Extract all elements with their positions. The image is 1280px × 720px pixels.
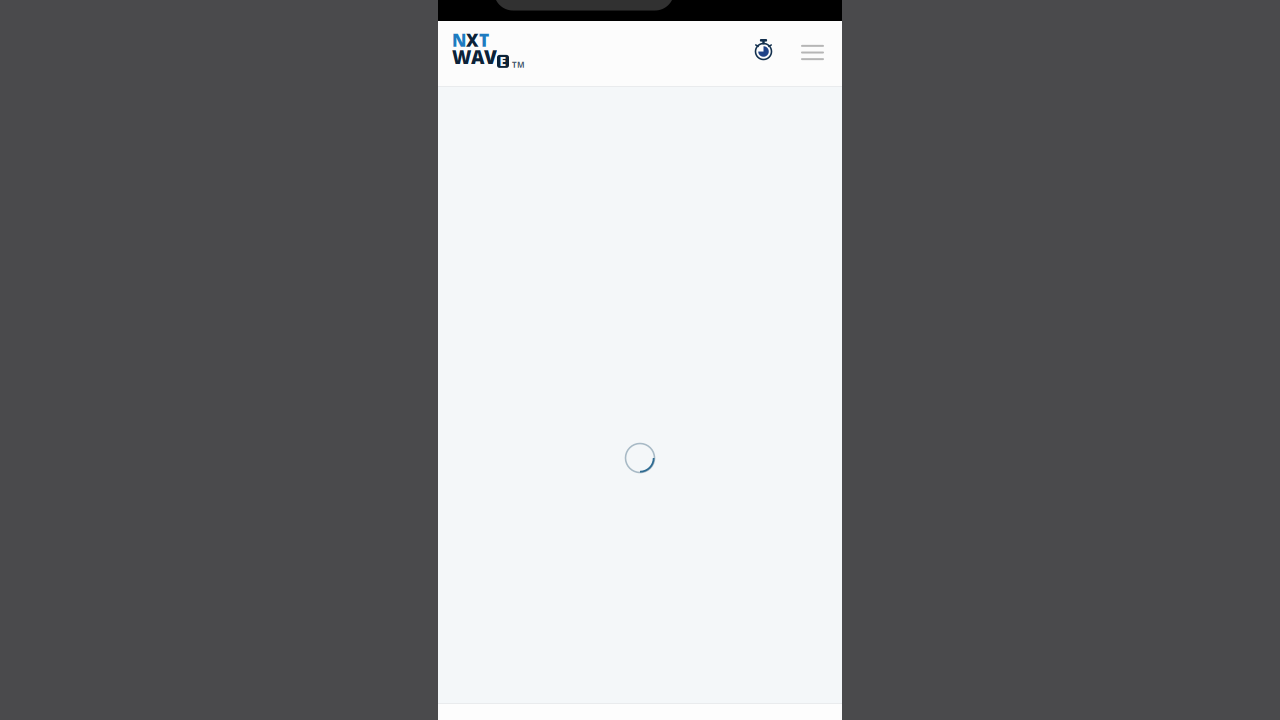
- staticText: E: [499, 53, 506, 69]
- button[interactable]: Timer: [745, 31, 788, 76]
- staticText: WAV: [452, 45, 497, 69]
- button[interactable]: Menu: [788, 32, 835, 74]
- staticText: X: [466, 28, 479, 51]
- button[interactable]: NXT WAVE home: [438, 25, 522, 82]
- staticText: T: [479, 28, 489, 51]
- staticText: N: [452, 28, 466, 51]
- staticText: TM: [512, 59, 525, 70]
